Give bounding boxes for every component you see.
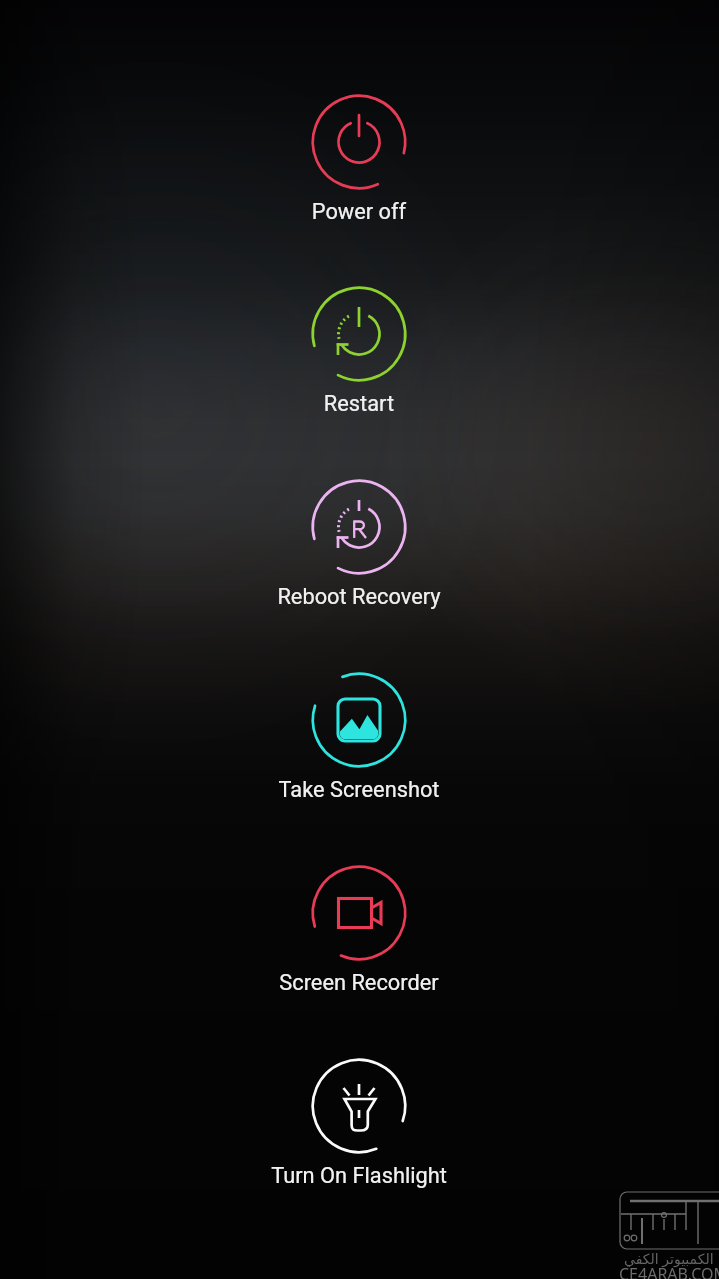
button[interactable]: Take Screenshot: [229, 662, 489, 804]
button[interactable]: Power off: [229, 84, 489, 226]
button[interactable]: Restart: [229, 276, 489, 418]
staticText: Power off: [229, 199, 489, 225]
button[interactable]: Turn On Flashlight: [229, 1048, 489, 1190]
staticText: Reboot Recovery: [229, 584, 489, 610]
staticText: الكمبيوتر الكفي: [624, 1249, 714, 1268]
staticText: Restart: [229, 391, 489, 417]
staticText: Turn On Flashlight: [229, 1163, 489, 1189]
staticText: CE4ARAB.COM: [619, 1263, 719, 1279]
button[interactable]: Screen Recorder: [229, 855, 489, 997]
staticText: Take Screenshot: [229, 777, 489, 803]
staticText: Screen Recorder: [229, 970, 489, 996]
button[interactable]: Reboot Recovery: [229, 469, 489, 611]
